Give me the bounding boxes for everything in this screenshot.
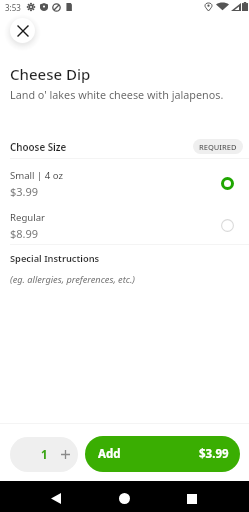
staticText: Small | 4 oz	[10, 169, 64, 182]
staticText: Cheese Dip	[10, 64, 91, 84]
button[interactable]: Add	[85, 436, 240, 472]
staticText: REQUIRED	[199, 142, 237, 152]
button[interactable]: Regular	[0, 207, 249, 249]
button[interactable]: Small | 4 oz	[0, 165, 249, 207]
staticText: $3.99	[199, 446, 229, 462]
button[interactable]: Recent apps	[176, 483, 208, 512]
staticText: 3:53	[5, 2, 21, 13]
button[interactable]: Home	[108, 483, 140, 512]
staticText: 1	[41, 447, 48, 463]
staticText: $3.99	[10, 184, 39, 199]
staticText: Regular	[10, 211, 46, 224]
button[interactable]: Back	[40, 483, 72, 512]
staticText: Special Instructions	[10, 252, 100, 265]
staticText: (eg. allergies, preferences, etc.)	[10, 273, 135, 286]
button[interactable]: Close	[10, 18, 35, 43]
staticText: $8.99	[10, 226, 39, 241]
button[interactable]: Increase quantity	[52, 437, 78, 472]
staticText: Add	[98, 446, 121, 462]
button[interactable]: Decrease quantity	[10, 437, 36, 472]
staticText: Choose Size	[10, 141, 67, 154]
staticText: Land o' lakes white cheese with jalapeno…	[10, 87, 224, 102]
